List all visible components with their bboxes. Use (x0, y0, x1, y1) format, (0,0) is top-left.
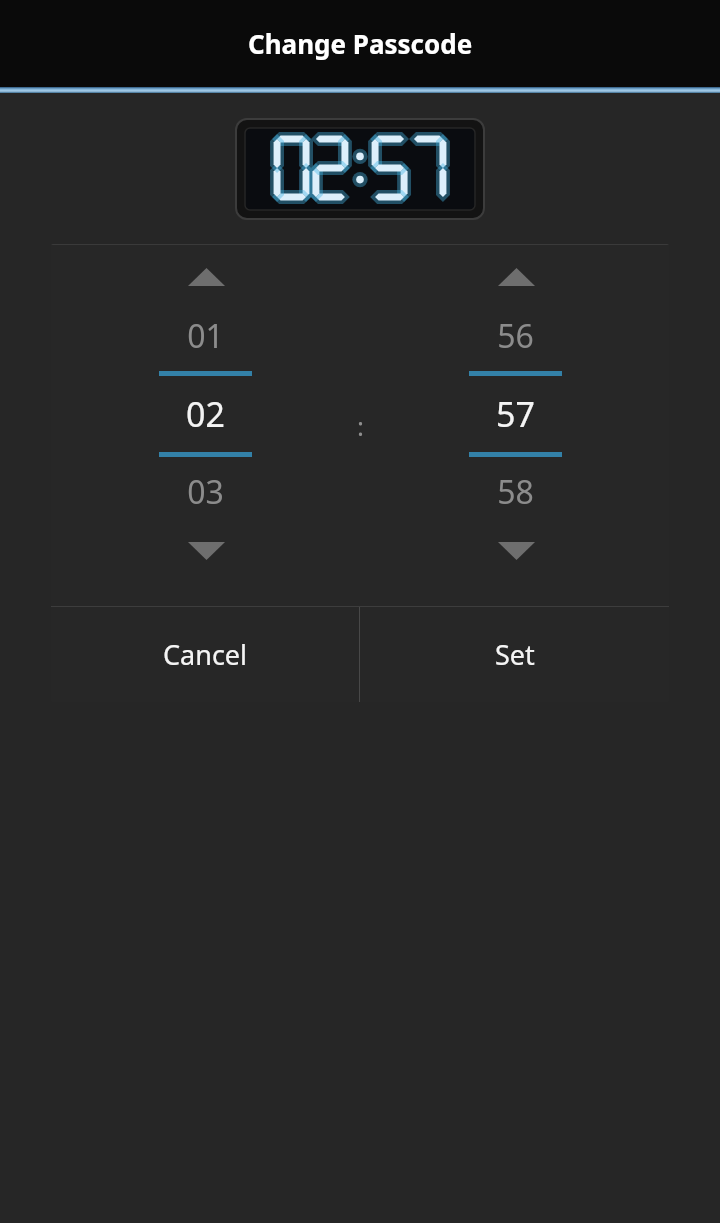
button[interactable]: 56 (469, 309, 562, 363)
staticText: 57 (496, 391, 535, 437)
staticText: Change Passcode (248, 26, 473, 61)
staticText: 58 (497, 470, 534, 514)
button[interactable]: 58 (469, 465, 562, 519)
button[interactable]: Increment (176, 259, 236, 295)
button[interactable]: Increment (486, 259, 546, 295)
staticText: Set (495, 636, 535, 673)
button[interactable]: Cancel (51, 607, 359, 702)
staticText: 03 (187, 470, 224, 514)
button[interactable]: 03 (159, 465, 252, 519)
button[interactable]: 57 (469, 376, 562, 452)
button[interactable]: Decrement (486, 533, 546, 569)
staticText: 02 (186, 391, 225, 437)
staticText: 56 (497, 314, 534, 358)
button[interactable]: Set (360, 607, 669, 702)
button[interactable]: Decrement (176, 533, 236, 569)
staticText: 01 (187, 314, 224, 358)
staticText: : (357, 408, 364, 443)
button[interactable]: 02 (159, 376, 252, 452)
button[interactable]: 01 (159, 309, 252, 363)
staticText: Cancel (163, 636, 248, 673)
